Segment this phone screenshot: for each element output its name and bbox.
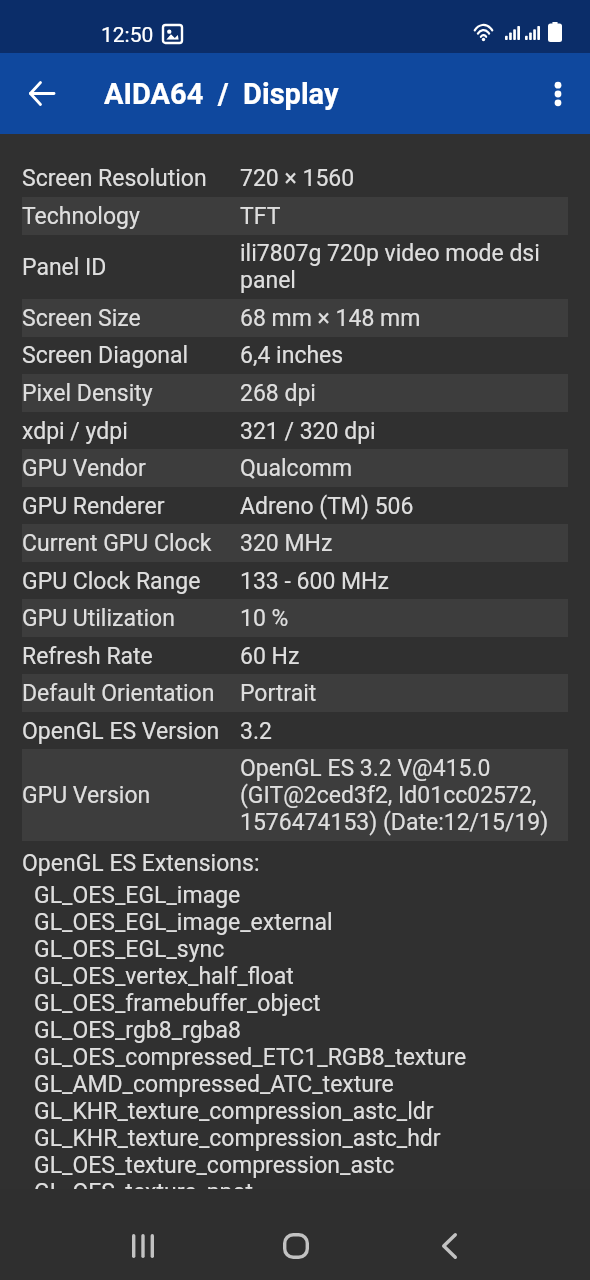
button[interactable]: Screen Diagonal bbox=[0, 336, 590, 374]
staticText: GPU Utilization bbox=[22, 605, 240, 632]
button[interactable]: GPU Clock Range bbox=[0, 562, 590, 600]
button[interactable]: Pixel Density bbox=[0, 374, 590, 412]
staticText: Screen Diagonal bbox=[22, 342, 240, 369]
staticText: Portrait bbox=[240, 680, 317, 707]
button[interactable]: GPU Utilization bbox=[0, 599, 590, 637]
button[interactable]: Default Orientation bbox=[0, 674, 590, 712]
staticText: GPU Version bbox=[22, 782, 240, 809]
staticText: TFT bbox=[240, 203, 281, 230]
staticText: 133 - 600 MHz bbox=[240, 568, 389, 595]
staticText: GPU Vendor bbox=[22, 455, 240, 482]
staticText: Pixel Density bbox=[22, 380, 240, 407]
button[interactable]: Refresh Rate bbox=[0, 637, 590, 675]
staticText: 320 MHz bbox=[240, 530, 333, 557]
staticText: 6,4 inches bbox=[240, 342, 344, 369]
staticText: xdpi / ydpi bbox=[22, 418, 240, 445]
staticText: OpenGL ES Extensions: bbox=[22, 850, 260, 877]
staticText: Qualcomm bbox=[240, 455, 353, 482]
staticText: Technology bbox=[22, 203, 240, 230]
button[interactable]: Home bbox=[266, 1220, 325, 1272]
staticText: GPU Renderer bbox=[22, 493, 240, 520]
staticText: GL_OES_EGL_image GL_OES_EGL_image_extern… bbox=[34, 882, 467, 1189]
staticText: 10 % bbox=[240, 605, 289, 632]
staticText: 68 mm × 148 mm bbox=[240, 305, 421, 332]
button[interactable]: Back bbox=[17, 69, 65, 117]
staticText: 720 × 1560 bbox=[240, 165, 355, 192]
button[interactable]: More options bbox=[534, 70, 582, 118]
button[interactable]: GPU Renderer bbox=[0, 487, 590, 525]
button[interactable]: GPU Version bbox=[0, 749, 590, 841]
staticText: 12:50 bbox=[101, 23, 154, 48]
staticText: OpenGL ES Version bbox=[22, 718, 240, 745]
button[interactable]: Current GPU Clock bbox=[0, 524, 590, 562]
staticText: OpenGL ES 3.2 V@415.0 (GIT@2ced3f2, Id01… bbox=[240, 755, 568, 836]
staticText: Screen Resolution bbox=[22, 165, 240, 192]
staticText: 268 dpi bbox=[240, 380, 316, 407]
button[interactable]: OpenGL ES Version bbox=[0, 712, 590, 750]
staticText: Adreno (TM) 506 bbox=[240, 493, 414, 520]
staticText: 3.2 bbox=[240, 718, 272, 745]
button[interactable]: Screen Size bbox=[0, 299, 590, 337]
staticText: 60 Hz bbox=[240, 643, 300, 670]
button[interactable]: GPU Vendor bbox=[0, 449, 590, 487]
button[interactable]: Panel ID bbox=[0, 234, 590, 299]
staticText: 321 / 320 dpi bbox=[240, 418, 376, 445]
staticText: Default Orientation bbox=[22, 680, 240, 707]
staticText: Refresh Rate bbox=[22, 643, 240, 670]
staticText: Screen Size bbox=[22, 305, 240, 332]
button[interactable]: Screen Resolution bbox=[0, 159, 590, 197]
staticText: ili7807g 720p video mode dsi panel bbox=[240, 240, 568, 294]
button[interactable]: Recent apps bbox=[113, 1220, 172, 1272]
button[interactable]: Back bbox=[420, 1220, 479, 1272]
button[interactable]: xdpi / ydpi bbox=[0, 412, 590, 450]
button[interactable]: Technology bbox=[0, 197, 590, 235]
staticText: AIDA64 / Display bbox=[104, 77, 339, 111]
staticText: Panel ID bbox=[22, 254, 240, 281]
staticText: GPU Clock Range bbox=[22, 568, 240, 595]
staticText: Current GPU Clock bbox=[22, 530, 240, 557]
